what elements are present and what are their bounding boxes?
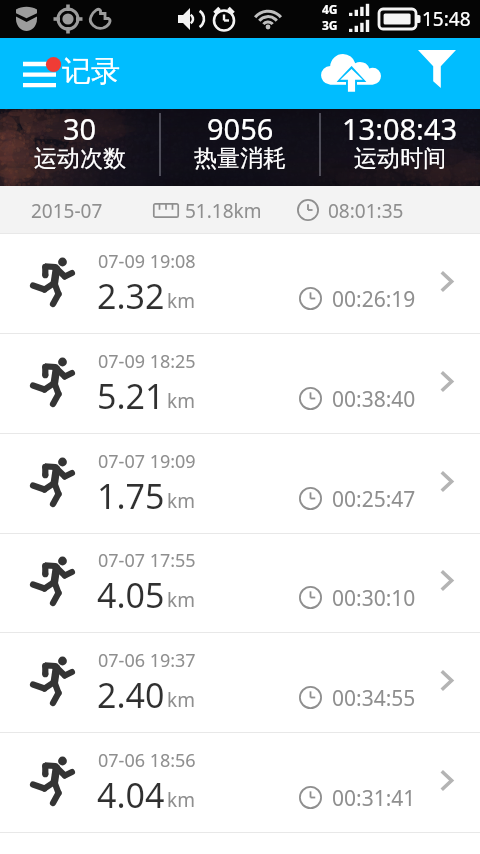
staticText: 9056 — [207, 109, 274, 148]
button[interactable]: 07-06 18:56 — [0, 733, 480, 833]
staticText: 07-06 19:37 — [98, 648, 196, 673]
staticText: 3G — [322, 17, 338, 33]
staticText: 07-06 18:56 — [98, 748, 196, 773]
staticText: 00:31:41 — [332, 784, 416, 813]
staticText: 运动次数 — [34, 144, 126, 173]
staticText: 08:01:35 — [328, 198, 404, 224]
staticText: 07-07 19:09 — [98, 449, 196, 474]
button[interactable]: 07-06 19:37 — [0, 633, 480, 733]
staticText: 51.18km — [185, 198, 262, 224]
button[interactable]: Upload to cloud — [315, 41, 387, 101]
staticText: 00:30:10 — [332, 584, 416, 613]
staticText: km — [167, 787, 195, 813]
button[interactable]: 07-09 18:25 — [0, 334, 480, 434]
staticText: km — [167, 687, 195, 713]
staticText: 30 — [63, 109, 97, 148]
staticText: 4.05 — [97, 572, 165, 618]
staticText: 1.75 — [97, 473, 165, 519]
staticText: 07-07 17:55 — [98, 548, 196, 573]
staticText: 5.21 — [97, 373, 165, 419]
staticText: km — [167, 587, 195, 613]
staticText: 4.04 — [97, 772, 165, 818]
staticText: 2015-07 — [31, 198, 103, 224]
button[interactable]: 07-07 19:09 — [0, 434, 480, 534]
staticText: 2.40 — [97, 672, 165, 718]
staticText: 2.32 — [97, 273, 165, 319]
staticText: 13:08:43 — [342, 109, 458, 148]
staticText: 15:48 — [422, 6, 471, 32]
staticText: 4G — [322, 1, 338, 17]
staticText: 00:26:19 — [332, 285, 416, 314]
staticText: 07-09 19:08 — [98, 249, 196, 274]
button[interactable]: Menu — [8, 46, 66, 102]
staticText: 记录 — [62, 53, 120, 90]
button[interactable]: Filter — [402, 39, 472, 99]
staticText: km — [167, 488, 195, 514]
staticText: 00:38:40 — [332, 385, 416, 414]
staticText: 运动时间 — [354, 144, 446, 173]
staticText: 07-09 18:25 — [98, 349, 196, 374]
button[interactable]: 07-07 17:55 — [0, 533, 480, 633]
staticText: 00:34:55 — [332, 684, 416, 713]
staticText: km — [167, 288, 195, 314]
staticText: 热量消耗 — [194, 144, 286, 173]
staticText: 00:25:47 — [332, 485, 416, 514]
button[interactable]: 07-09 19:08 — [0, 234, 480, 334]
staticText: km — [167, 388, 195, 414]
